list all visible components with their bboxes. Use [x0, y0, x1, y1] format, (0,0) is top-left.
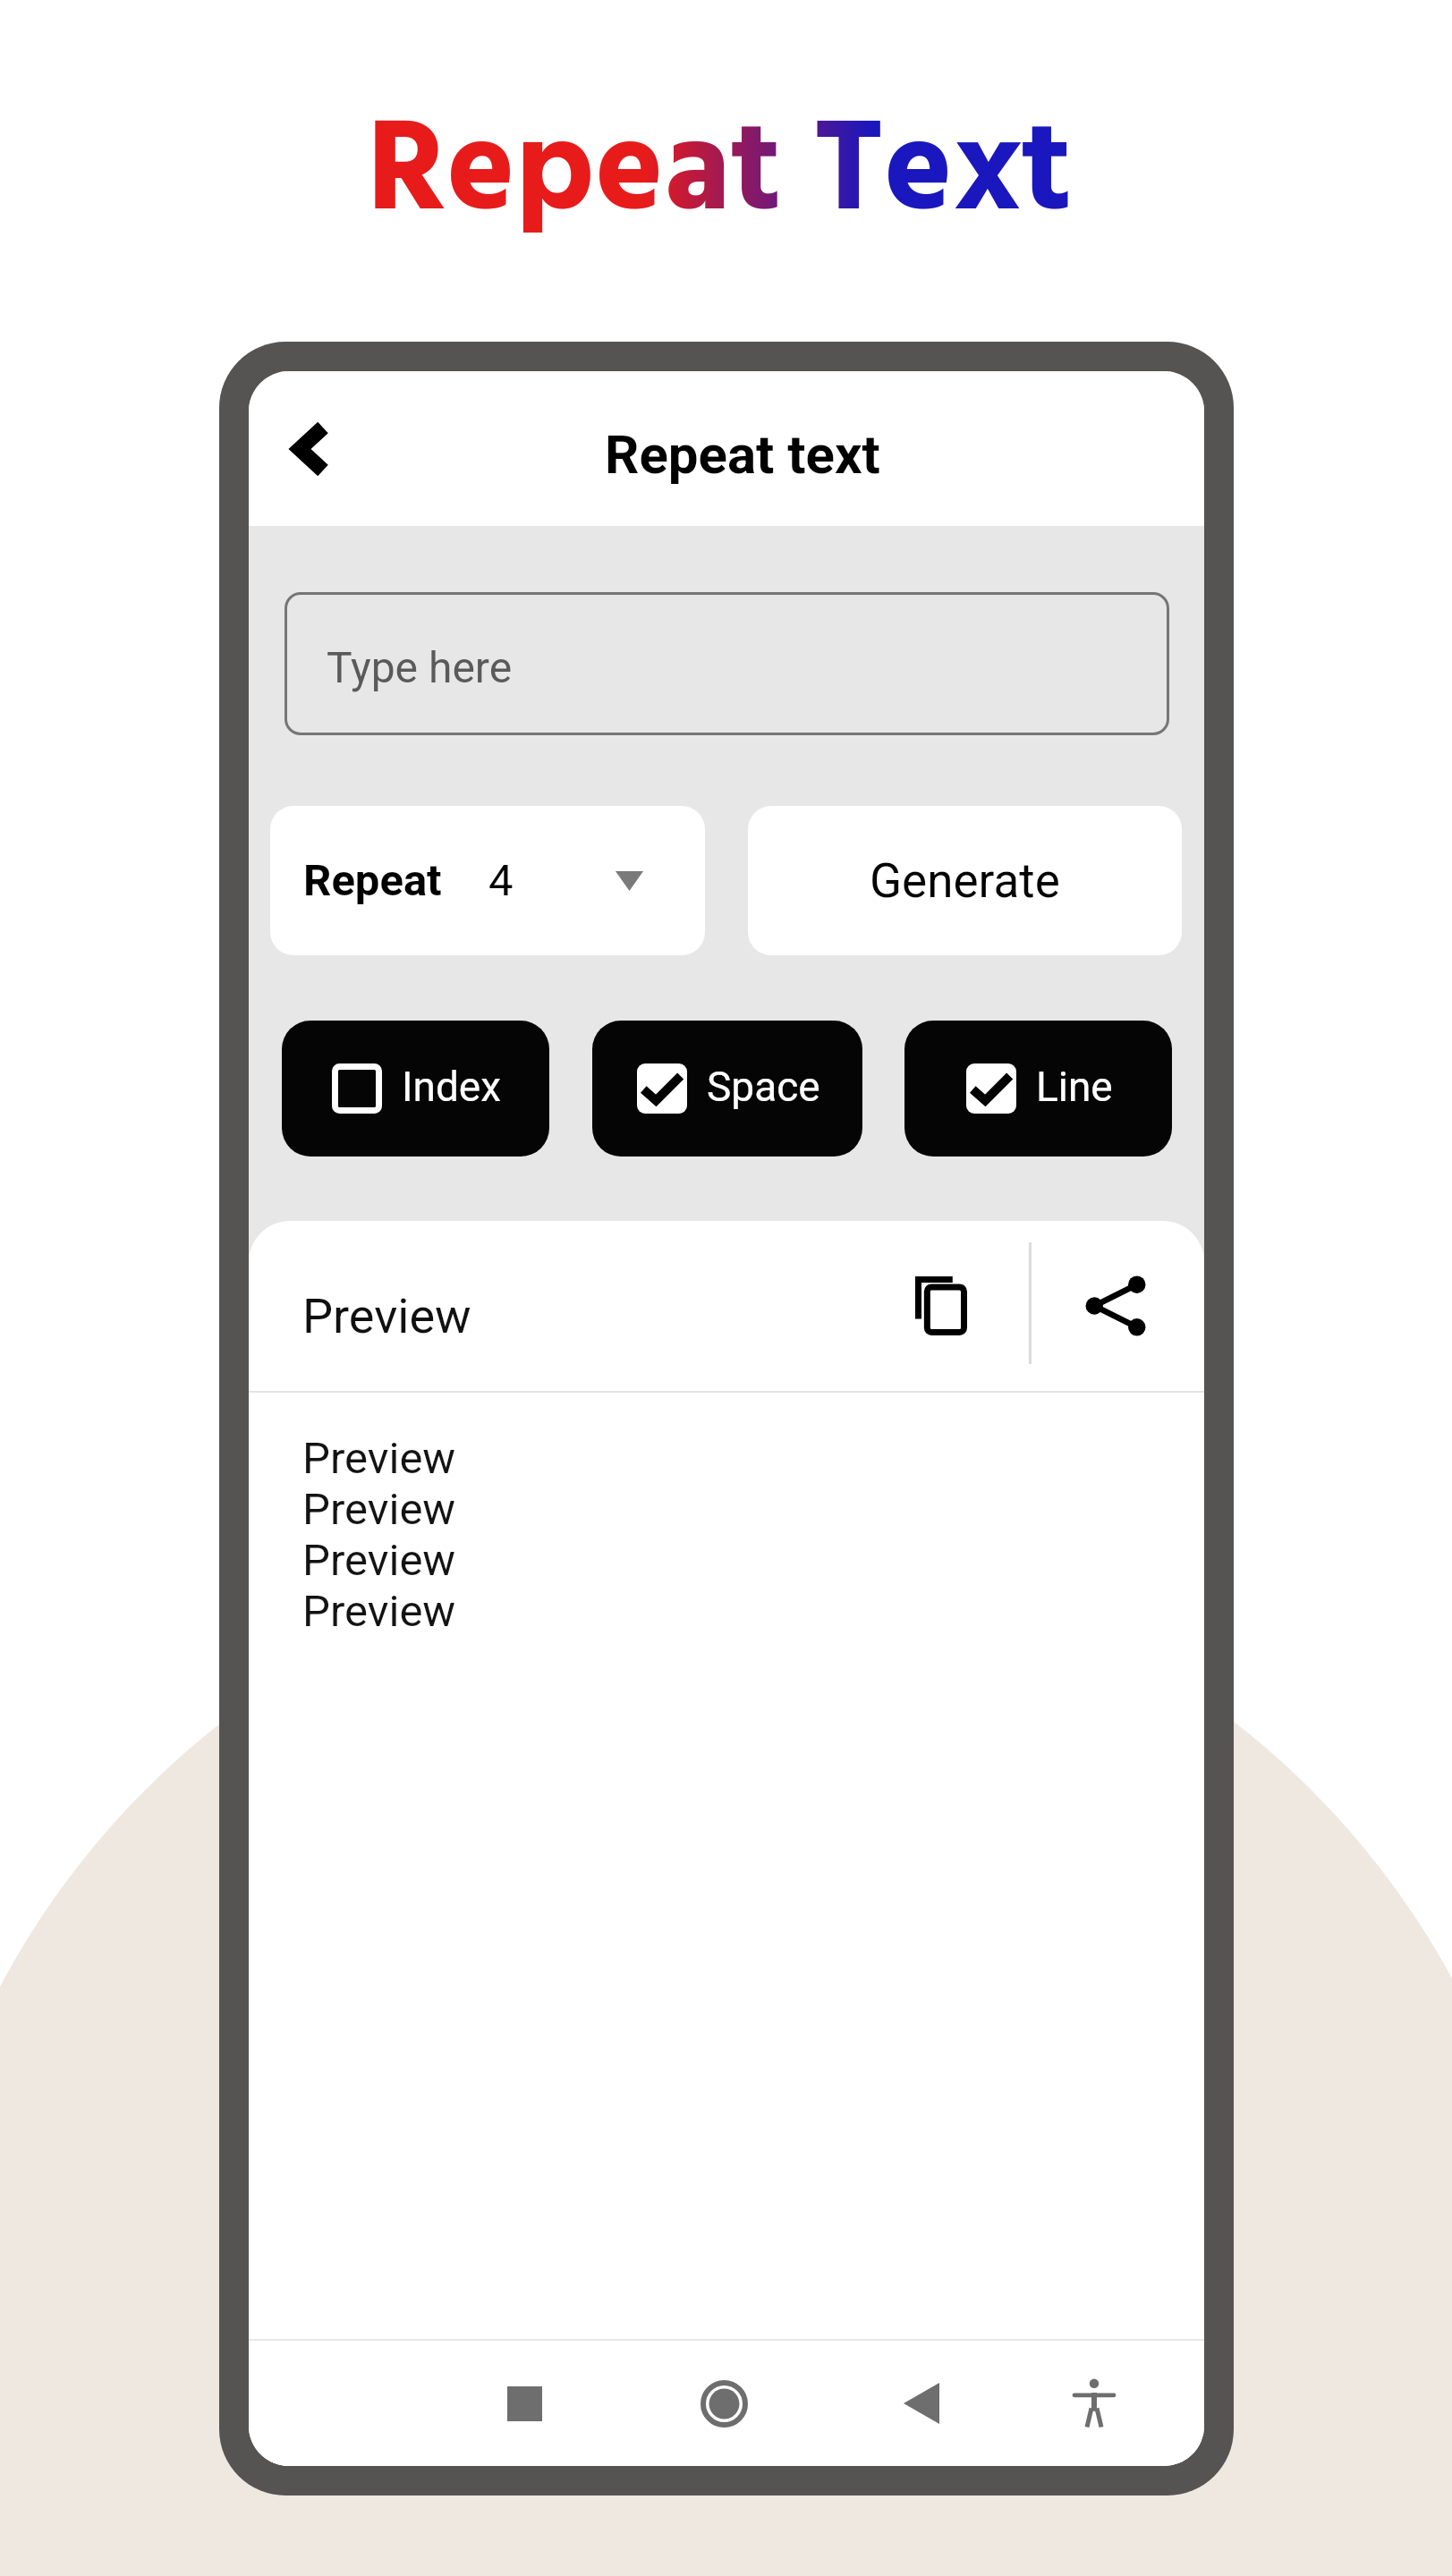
button[interactable]: Share [1062, 1252, 1169, 1360]
staticText: Repeat text [605, 423, 880, 486]
button[interactable]: Line [904, 1021, 1172, 1157]
button[interactable]: Home [684, 2363, 764, 2444]
staticText: Preview [302, 1535, 456, 1586]
button[interactable]: Back [263, 401, 360, 497]
staticText: Line [1036, 1063, 1113, 1111]
button[interactable]: Space [592, 1021, 862, 1157]
button[interactable]: Accessibility [1054, 2363, 1134, 2444]
staticText: Preview [302, 1484, 456, 1535]
staticText: Preview [302, 1433, 456, 1484]
staticText: Preview [302, 1288, 471, 1344]
button[interactable]: Back [881, 2363, 962, 2444]
button[interactable]: Index [282, 1021, 549, 1157]
button[interactable]: Copy [887, 1252, 995, 1360]
staticText: Repeat Text [367, 72, 1072, 279]
staticText: Preview [302, 1586, 456, 1637]
staticText: Space [707, 1063, 820, 1111]
button[interactable]: Recent apps [484, 2363, 565, 2444]
button[interactable]: Repeat [270, 806, 705, 955]
button[interactable]: Type here [284, 592, 1169, 735]
staticText: Index [402, 1063, 502, 1111]
staticText: Generate [870, 853, 1060, 909]
staticText: Type here [327, 642, 513, 692]
staticText: 4 [488, 855, 514, 906]
button[interactable]: Generate [748, 806, 1182, 955]
staticText: Repeat [303, 855, 442, 906]
